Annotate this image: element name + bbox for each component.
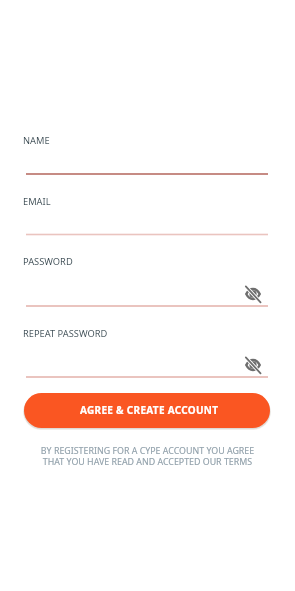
button[interactable]: AGREE & CREATE ACCOUNT xyxy=(24,393,270,428)
staticText: NAME xyxy=(23,134,50,147)
button[interactable] xyxy=(20,252,238,310)
button[interactable] xyxy=(20,130,272,178)
button[interactable]: BY REGISTERING FOR A CYPE ACCOUNT YOU AG… xyxy=(30,443,265,467)
staticText: BY REGISTERING FOR A CYPE ACCOUNT YOU AG… xyxy=(30,445,265,467)
button[interactable]: Show repeat password xyxy=(241,353,265,377)
button[interactable]: Show password xyxy=(241,282,265,306)
staticText: PASSWORD xyxy=(23,255,73,268)
button[interactable] xyxy=(20,323,238,381)
button[interactable] xyxy=(20,191,272,239)
staticText: REPEAT PASSWORD xyxy=(23,327,108,340)
staticText: EMAIL xyxy=(23,195,51,208)
staticText: AGREE & CREATE ACCOUNT xyxy=(80,403,219,417)
